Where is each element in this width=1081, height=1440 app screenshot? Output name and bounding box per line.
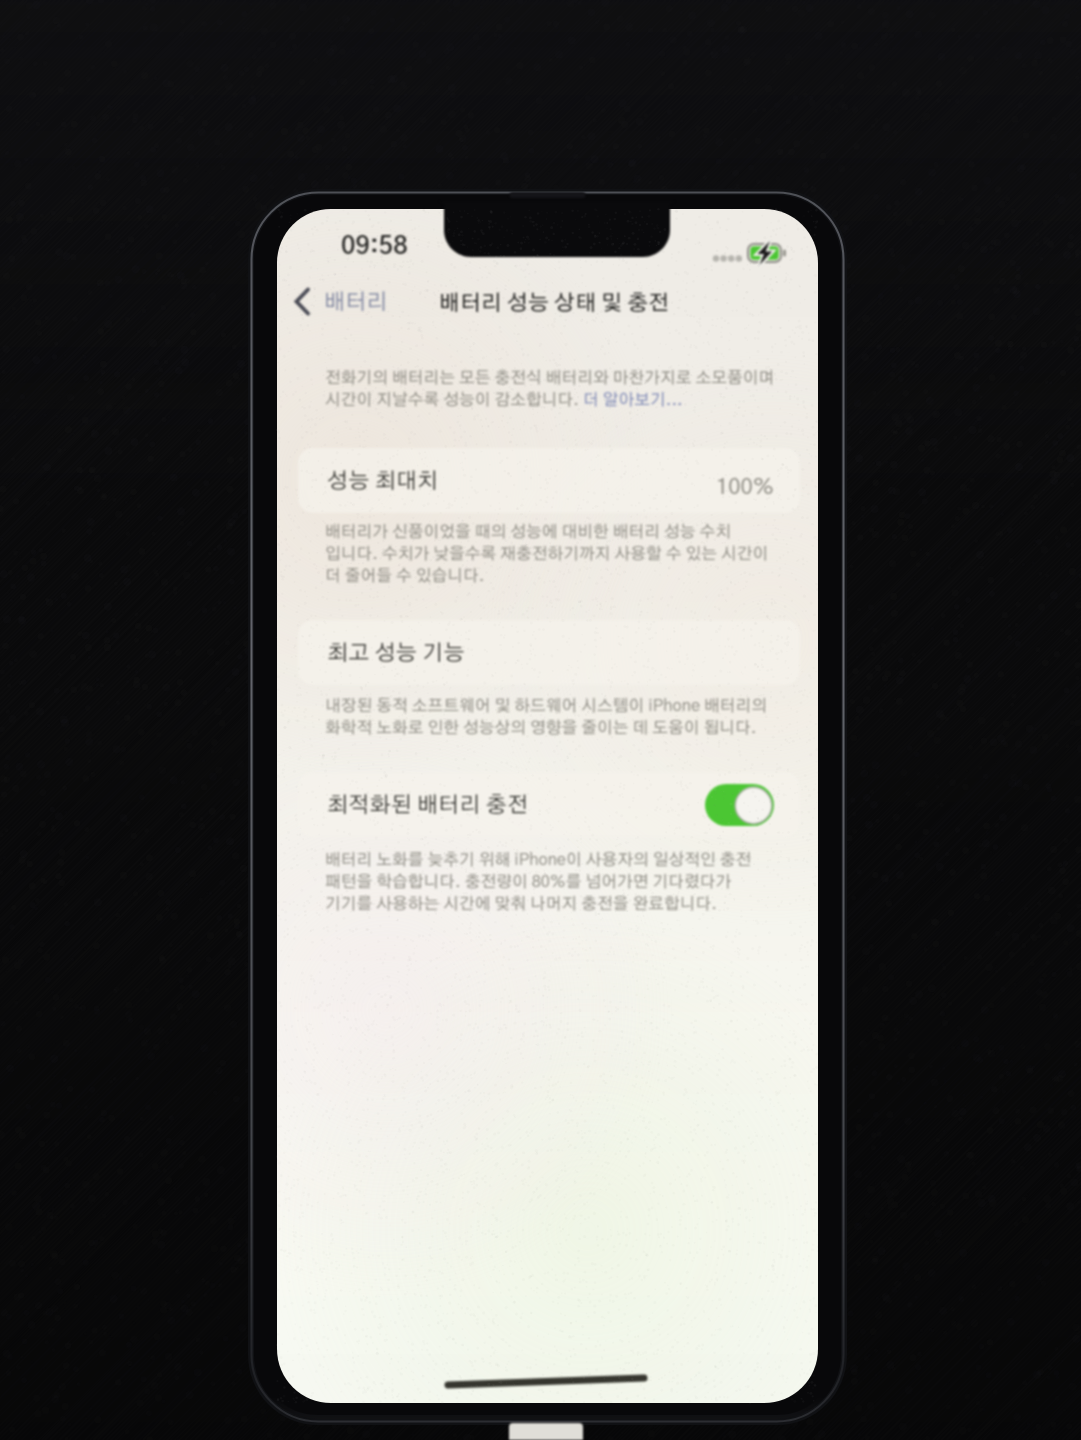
staticText: 100% [716,476,774,498]
staticText: 화학적 노화로 인한 성능상의 영향을 줄이는 데 도움이 됩니다. [325,720,757,736]
button[interactable]: 성능 최대치 [298,448,800,513]
button[interactable]: 최적화된 배터리 충전 켬 [705,784,774,826]
staticText: 기기를 사용하는 시간에 맞춰 나머지 충전을 완료합니다. [325,896,717,912]
staticText: 성능 최대치 [327,470,439,492]
staticText: 배터리 [324,291,388,313]
staticText: 09:58 [341,234,408,259]
staticText: 더 줄어들 수 있습니다. [325,568,485,584]
staticText: 배터리 노화를 늦추기 위해 iPhone이 사용자의 일상적인 충전 [325,852,752,868]
staticText: 입니다. 수치가 낮을수록 재충전하기까지 사용할 수 있는 시간이 [325,546,769,562]
staticText: 최적화된 배터리 충전 [327,794,529,816]
staticText: 전화기의 배터리는 모든 충전식 배터리와 마찬가지로 소모품이며 [325,370,775,386]
button[interactable]: 더 알아보기... [583,392,683,408]
staticText: 최고 성능 기능 [327,642,465,664]
staticText: 내장된 동적 소프트웨어 및 하드웨어 시스템이 iPhone 배터리의 [325,698,767,714]
staticText: 배터리 성능 상태 및 충전 [439,293,670,315]
staticText: 시간이 지날수록 성능이 감소합니다. [325,392,583,408]
button[interactable]: 최고 성능 기능 [298,620,800,685]
button[interactable]: 배터리 [293,285,388,319]
button[interactable]: 최적화된 배터리 충전 [298,772,800,837]
staticText: 배터리가 신품이었을 때의 성능에 대비한 배터리 성능 수치 [325,524,732,540]
staticText: 패턴을 학습합니다. 충전량이 80%를 넘어가면 기다렸다가 [325,874,732,890]
